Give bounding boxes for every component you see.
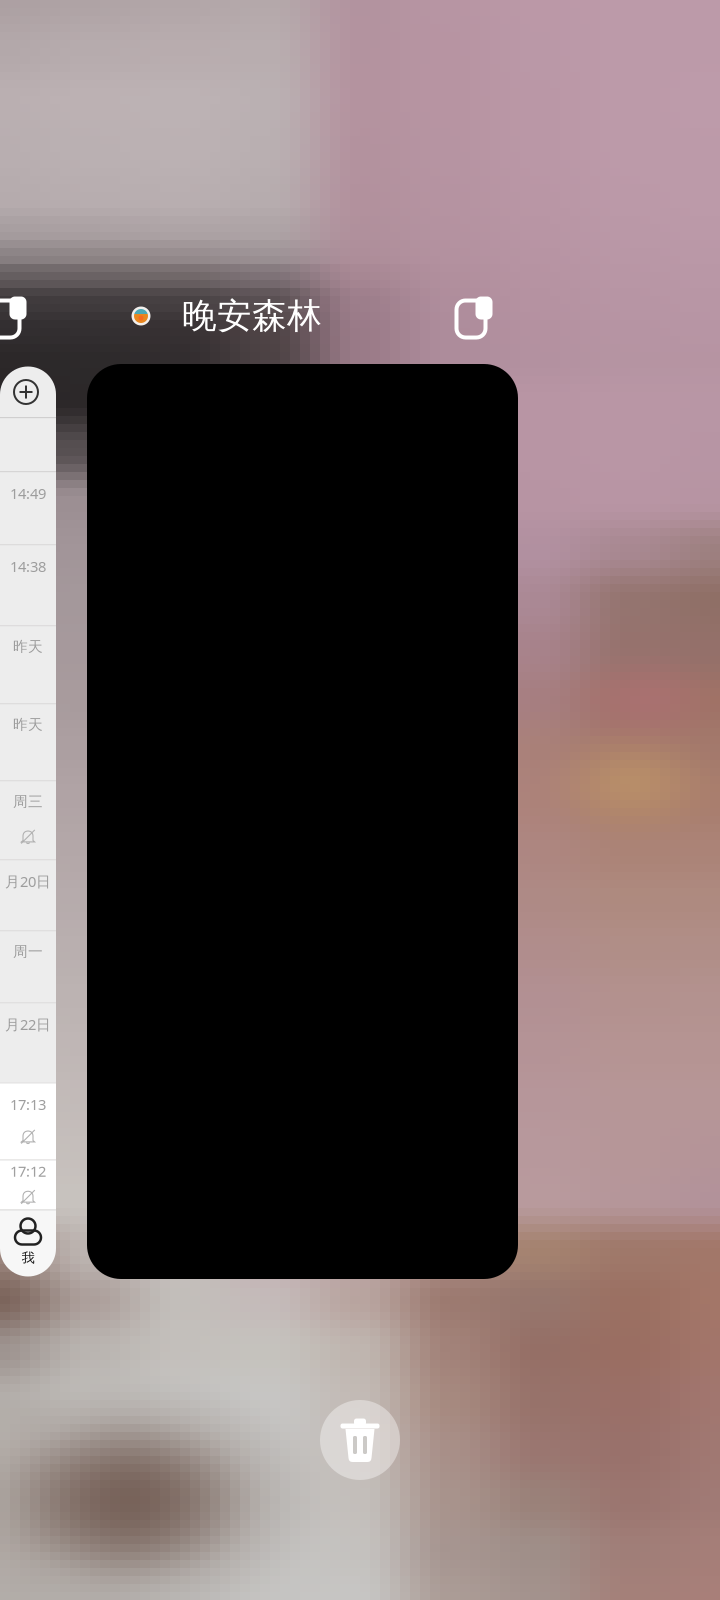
button[interactable] — [0, 366, 56, 1276]
staticText: 昨天 — [13, 715, 43, 733]
staticText: 17:13 — [10, 1094, 46, 1114]
staticText: 14:38 — [10, 556, 46, 576]
staticText: 月20日 — [5, 871, 51, 891]
button[interactable] — [87, 364, 518, 1279]
staticText: 周三 — [13, 792, 43, 810]
staticText: 月22日 — [5, 1014, 51, 1034]
button[interactable]: Floating window — [450, 290, 502, 342]
staticText: 晚安森林 — [182, 295, 322, 337]
staticText: 我 — [21, 1249, 34, 1266]
button[interactable]: Split screen — [0, 290, 52, 342]
staticText: 昨天 — [13, 637, 43, 655]
staticText: 14:49 — [10, 483, 46, 503]
button[interactable]: Clear all — [320, 1400, 400, 1480]
staticText: 周一 — [13, 942, 43, 960]
staticText: 17:12 — [10, 1161, 46, 1181]
